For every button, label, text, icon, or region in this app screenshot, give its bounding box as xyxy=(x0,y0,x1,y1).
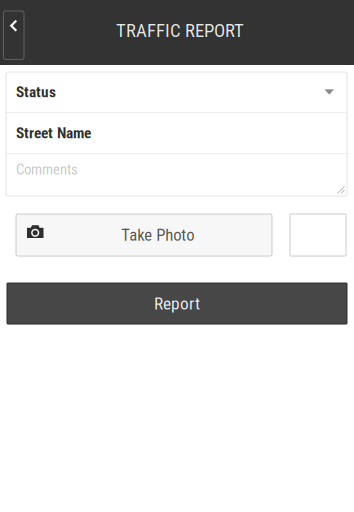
button[interactable]: Street Name xyxy=(6,113,347,153)
staticText: TRAFFIC REPORT xyxy=(116,20,244,41)
staticText: Status xyxy=(16,83,56,101)
button[interactable]: Back xyxy=(3,11,24,59)
staticText: Street Name xyxy=(16,124,91,142)
staticText: Comments xyxy=(16,161,78,178)
staticText: Take Photo xyxy=(121,225,194,245)
staticText: Report xyxy=(154,293,200,314)
button[interactable]: Status xyxy=(6,72,347,112)
button[interactable]: Take Photo xyxy=(16,214,272,256)
button[interactable]: Report xyxy=(7,283,347,324)
